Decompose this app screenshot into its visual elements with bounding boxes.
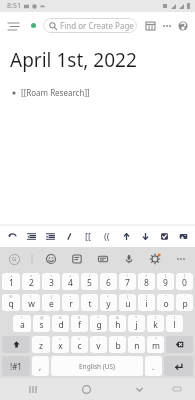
button[interactable]: ~	[62, 294, 79, 311]
button[interactable]: :	[90, 336, 107, 353]
staticText: _	[108, 273, 110, 278]
button[interactable]: Undo	[4, 226, 20, 246]
button[interactable]: ,	[32, 356, 49, 376]
staticText: ?	[155, 336, 157, 341]
button[interactable]: <	[119, 273, 136, 290]
button[interactable]: Voice input	[121, 251, 137, 267]
button[interactable]: |	[42, 294, 60, 311]
button[interactable]: =	[62, 273, 79, 290]
button[interactable]: \	[22, 294, 40, 311]
staticText: $	[78, 315, 81, 320]
button[interactable]: {	[119, 294, 136, 311]
staticText: 5	[87, 277, 92, 289]
button[interactable]: ]	[176, 273, 193, 290]
button[interactable]: "	[128, 336, 145, 353]
button[interactable]: Shift	[2, 336, 30, 353]
button[interactable]: Clipboard	[95, 251, 111, 267]
staticText: '	[184, 294, 185, 299]
button[interactable]: /	[81, 273, 98, 290]
button[interactable]: +	[52, 336, 69, 353]
button[interactable]: Find or Create Page	[43, 18, 137, 33]
button[interactable]: [[	[80, 226, 96, 246]
staticText: b	[115, 340, 121, 352]
button[interactable]: Help	[174, 17, 192, 35]
button[interactable]: Move down	[137, 226, 153, 246]
button[interactable]: Todo	[156, 226, 172, 246]
button[interactable]: Backspace	[166, 336, 193, 353]
button[interactable]: [	[157, 273, 174, 290]
button[interactable]: ;	[109, 336, 126, 353]
button[interactable]: "	[157, 294, 174, 311]
staticText: }	[146, 294, 148, 299]
button[interactable]: Back	[128, 378, 150, 400]
button[interactable]: ^	[100, 294, 117, 311]
button[interactable]: Move up	[118, 226, 134, 246]
staticText: e	[49, 298, 54, 310]
staticText: English (US)	[79, 362, 116, 371]
staticText: h	[115, 319, 121, 331]
staticText: w	[28, 298, 35, 310]
staticText: ,	[39, 361, 42, 372]
button[interactable]: Enter	[164, 356, 193, 376]
staticText: 4	[68, 277, 73, 289]
staticText: u	[125, 298, 131, 310]
button[interactable]: $	[71, 315, 88, 332]
button[interactable]: ×	[22, 273, 40, 290]
staticText: \	[30, 294, 32, 299]
staticText: o	[163, 298, 169, 310]
button[interactable]: Emoji	[43, 251, 59, 267]
button[interactable]: Google	[6, 251, 22, 267]
button[interactable]: Settings	[147, 251, 163, 267]
button[interactable]: ?	[147, 336, 164, 353]
staticText: 8:51	[7, 1, 21, 11]
button[interactable]: More options	[159, 18, 174, 33]
button[interactable]: ÷	[42, 273, 60, 290]
button[interactable]: Italic	[61, 226, 77, 246]
button[interactable]: =	[71, 336, 88, 353]
button[interactable]: )	[166, 315, 183, 332]
button[interactable]: English (US)	[51, 356, 143, 376]
button[interactable]: Recents	[22, 378, 44, 400]
button[interactable]: ((	[99, 226, 115, 246]
button[interactable]: -	[32, 336, 50, 353]
button[interactable]: `	[81, 294, 98, 311]
button[interactable]: !	[13, 315, 31, 332]
button[interactable]: (	[147, 315, 164, 332]
button[interactable]: >	[138, 273, 155, 290]
staticText: (	[155, 315, 157, 320]
button[interactable]: }	[138, 294, 155, 311]
staticText: ÷	[50, 273, 53, 278]
staticText: [[	[85, 230, 91, 242]
button[interactable]: '	[176, 294, 193, 311]
button[interactable]: Switch keyboard	[168, 380, 186, 398]
button[interactable]: *	[128, 315, 145, 332]
button[interactable]: Home	[75, 378, 97, 400]
staticText: "	[165, 294, 167, 299]
button[interactable]: Image	[175, 226, 191, 246]
button[interactable]: +	[2, 273, 20, 290]
button[interactable]: ^	[90, 315, 107, 332]
button[interactable]: .	[145, 356, 162, 376]
button[interactable]: Calendar	[142, 17, 159, 34]
button[interactable]: &	[109, 315, 126, 332]
button[interactable]: _	[100, 273, 117, 290]
staticText: &	[116, 315, 119, 320]
staticText: .	[152, 361, 155, 372]
button[interactable]: #	[52, 315, 69, 332]
staticText: 8	[144, 277, 149, 289]
staticText: ×	[30, 273, 33, 278]
staticText: y	[106, 298, 111, 310]
button[interactable]: %	[2, 294, 20, 311]
staticText: d	[58, 319, 64, 331]
staticText: `	[89, 294, 91, 299]
button[interactable]: Stickers	[69, 251, 85, 267]
button[interactable]: Indent	[42, 226, 58, 246]
button[interactable]: Menu	[0, 13, 26, 39]
button[interactable]: @	[33, 315, 50, 332]
button[interactable]: Outdent	[23, 226, 39, 246]
staticText: ((	[104, 230, 110, 242]
staticText: Find or Create Page	[60, 20, 134, 31]
button[interactable]: More	[173, 251, 189, 267]
button[interactable]: !#1	[2, 356, 30, 376]
staticText: >	[145, 273, 148, 278]
